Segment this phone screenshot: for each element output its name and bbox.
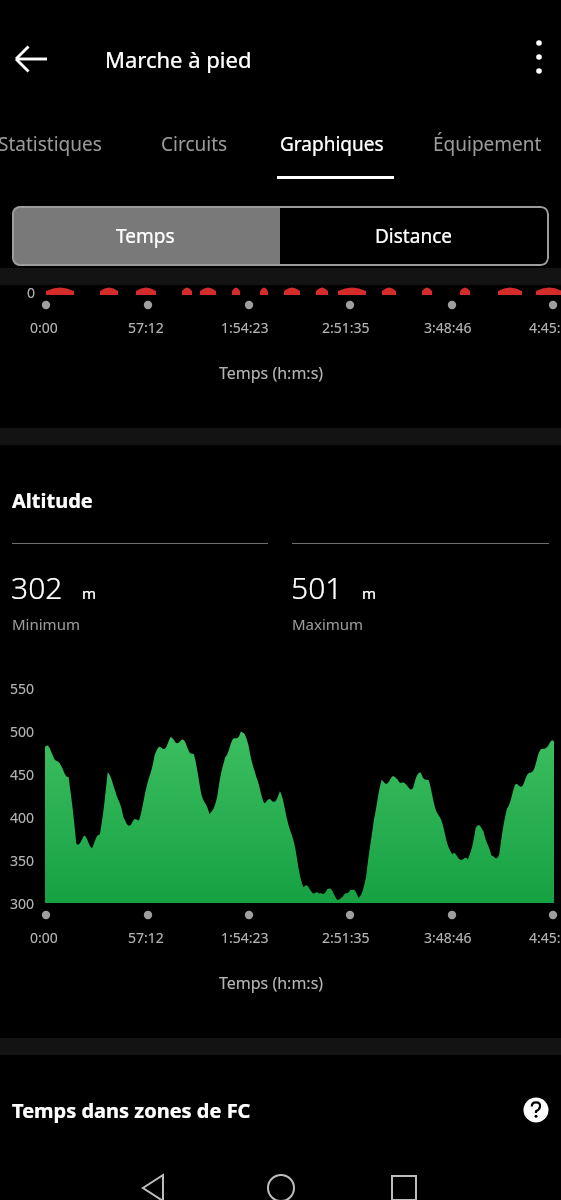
staticText: 0:00 [30,928,58,947]
staticText: Circuits [161,131,228,157]
staticText: 57:12 [128,928,164,947]
staticText: Maximum [292,614,364,634]
staticText: Temps (h:m:s) [219,362,324,384]
staticText: Équipement [433,131,542,157]
staticText: 300 [10,894,35,913]
staticText: Marche à pied [105,44,252,74]
button[interactable] [0,115,138,175]
staticText: 4:45:5 [529,318,561,337]
button[interactable]: Help [512,1086,560,1134]
staticText: 0 [27,283,36,302]
button[interactable] [420,115,561,175]
staticText: 0:00 [30,318,58,337]
staticText: m [82,583,97,603]
button[interactable]: Temps [12,206,280,266]
staticText: 400 [10,808,35,827]
staticText: Minimum [12,614,80,634]
staticText: 2:51:35 [322,318,370,337]
staticText: m [362,583,377,603]
staticText: 450 [10,765,35,784]
button[interactable]: More options [517,35,561,79]
staticText: Temps [116,223,175,249]
staticText: 500 [10,722,35,741]
staticText: 2:51:35 [322,928,370,947]
staticText: 350 [10,851,35,870]
staticText: Temps dans zones de FC [12,1097,251,1124]
staticText: 1:54:23 [221,928,269,947]
staticText: 4:45:5 [529,928,561,947]
staticText: Statistiques [0,131,102,157]
staticText: Temps (h:m:s) [219,972,324,994]
staticText: Altitude [12,487,93,514]
staticText: 1:54:23 [221,318,269,337]
staticText: 550 [10,679,35,698]
button[interactable]: Distance [280,206,549,266]
staticText: 302 [11,567,63,608]
staticText: Graphiques [280,131,384,157]
staticText: 501 [291,567,343,608]
button[interactable] [150,115,260,175]
staticText: 57:12 [128,318,164,337]
staticText: 3:48:46 [424,318,472,337]
staticText: 3:48:46 [424,928,472,947]
button[interactable]: Back [6,34,56,84]
staticText: Distance [375,223,452,249]
button[interactable] [268,115,404,175]
